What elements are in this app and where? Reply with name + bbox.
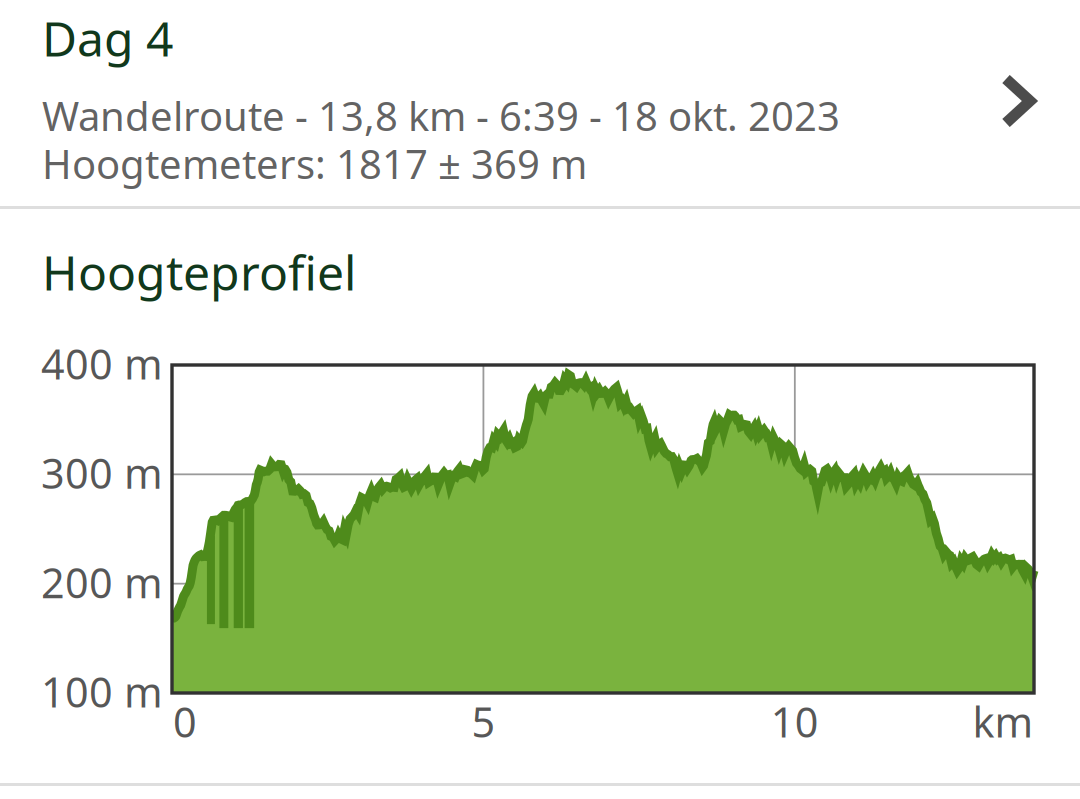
- staticText: Hoogteprofiel: [42, 240, 356, 304]
- staticText: Hoogtemeters: 1817 ± 369 m: [42, 137, 587, 190]
- button[interactable]: Dag 4: [0, 0, 1080, 207]
- staticText: 5: [471, 694, 495, 749]
- staticText: 300 m: [41, 445, 163, 500]
- staticText: 10: [771, 694, 819, 749]
- staticText: 200 m: [41, 555, 163, 610]
- staticText: 100 m: [41, 664, 163, 719]
- staticText: 0: [173, 694, 197, 749]
- staticText: Dag 4: [42, 6, 173, 70]
- staticText: Wandelroute - 13,8 km - 6:39 - 18 okt. 2…: [42, 89, 840, 142]
- staticText: km: [972, 694, 1033, 749]
- staticText: 400 m: [41, 336, 163, 391]
